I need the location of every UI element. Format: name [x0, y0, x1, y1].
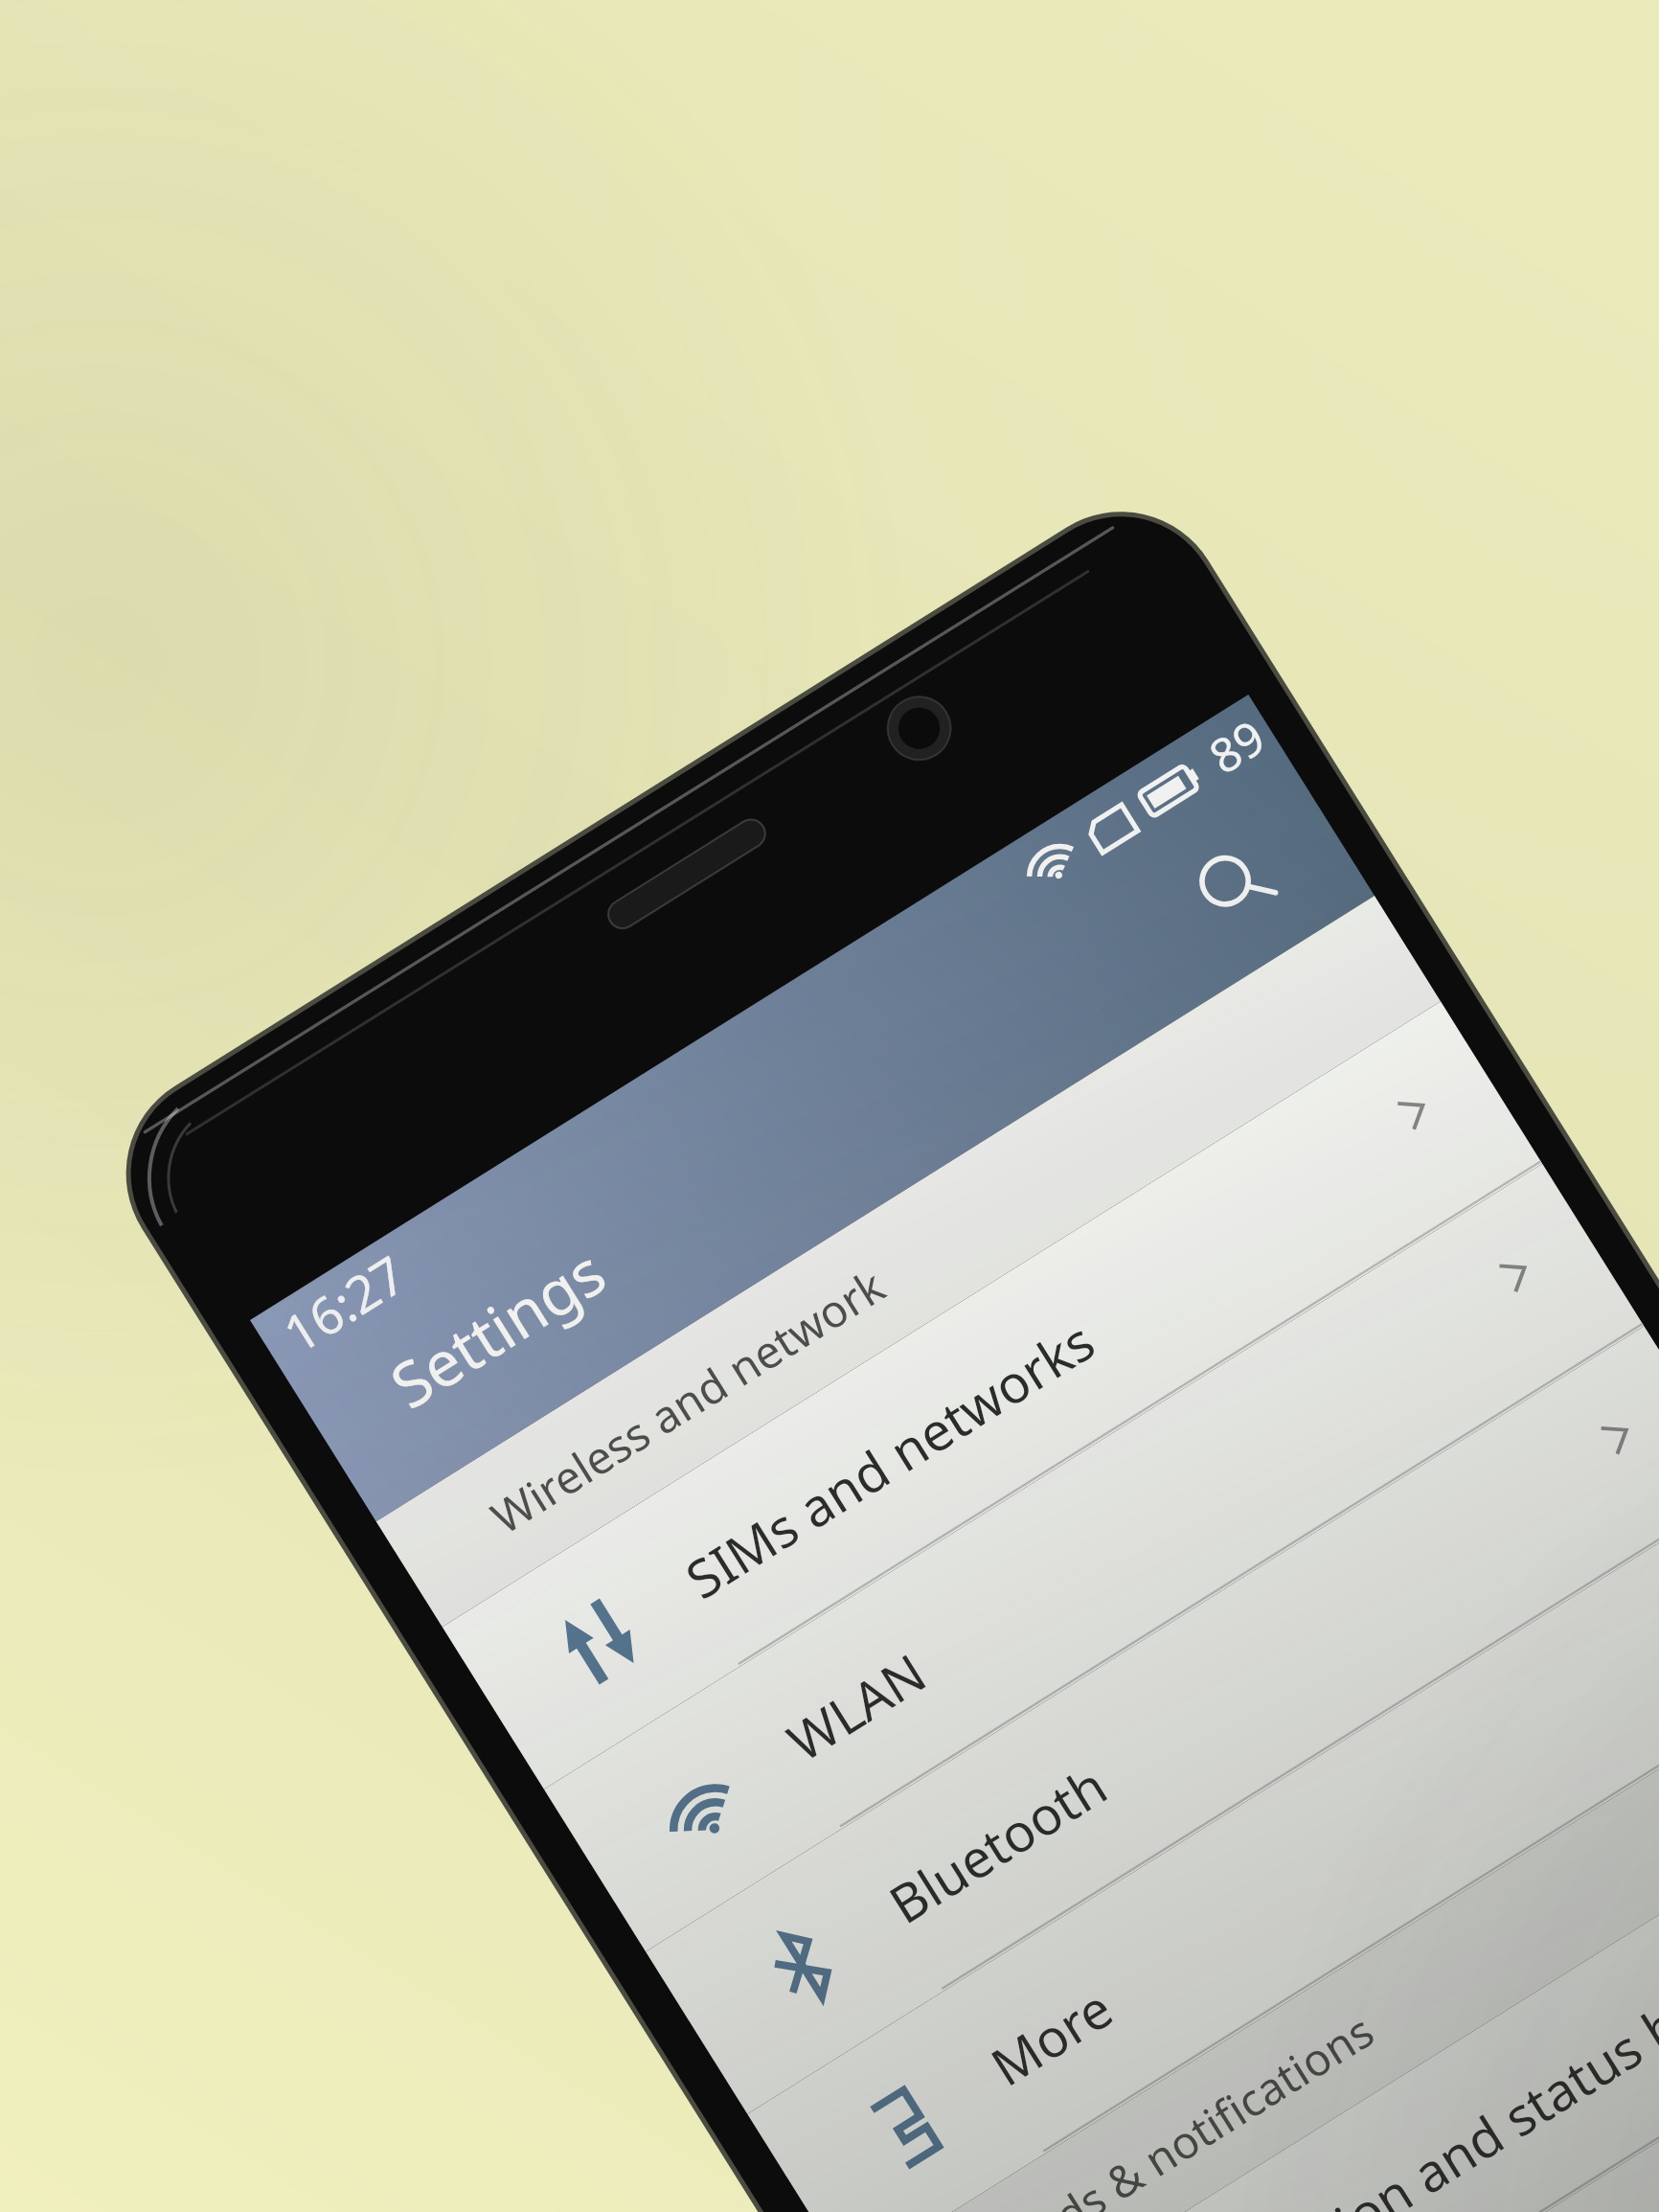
staticText: 16:27 [270, 1239, 418, 1368]
staticText: Notification and status bar [1145, 1961, 1659, 2212]
staticText: Bluetooth [876, 1749, 1120, 1939]
button[interactable]: Search [1173, 824, 1293, 944]
staticText: Settings [375, 1229, 620, 1426]
staticText: 89 [1197, 704, 1277, 788]
button[interactable]: More [747, 1488, 1659, 2212]
button[interactable]: SIMs and networks [442, 1001, 1542, 1789]
button[interactable]: Display [1016, 1918, 1659, 2212]
button[interactable]: WLAN [544, 1164, 1644, 1952]
button[interactable]: Bluetooth [646, 1326, 1659, 2114]
staticText: SIMs and networks [672, 1305, 1107, 1614]
staticText: WLAN [774, 1637, 938, 1776]
staticText: Sounds & notifications [952, 1999, 1385, 2212]
staticText: More [977, 1972, 1125, 2101]
button[interactable]: Notification and status bar [915, 1756, 1659, 2212]
staticText: Wireless and network [480, 1254, 896, 1547]
